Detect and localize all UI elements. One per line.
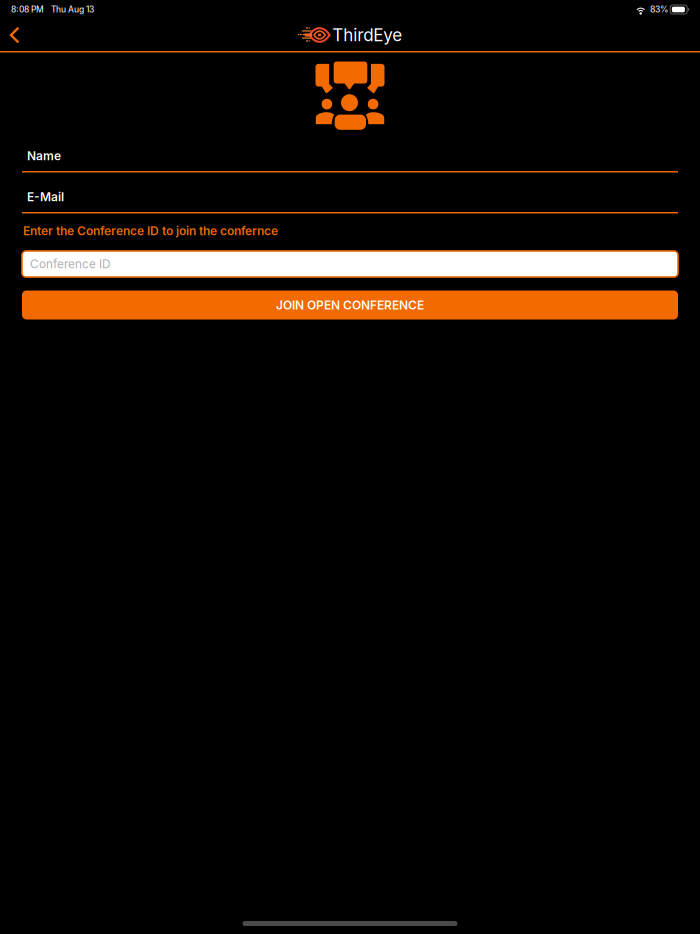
button[interactable]: JOIN OPEN CONFERENCE [22, 290, 678, 319]
staticText: Conference ID [30, 257, 110, 271]
staticText: Name [27, 148, 61, 163]
staticText: E-Mail [27, 189, 64, 204]
button[interactable]: Back [0, 19, 33, 50]
staticText: 83% [650, 4, 668, 15]
button[interactable]: Conference ID [22, 251, 678, 277]
staticText: JOIN OPEN CONFERENCE [276, 298, 424, 312]
staticText: ThirdEye [332, 25, 402, 45]
staticText: Enter the Conference ID to join the conf… [23, 223, 278, 238]
staticText: Thu Aug 13 [51, 4, 94, 15]
staticText: 8:08 PM [11, 4, 44, 15]
